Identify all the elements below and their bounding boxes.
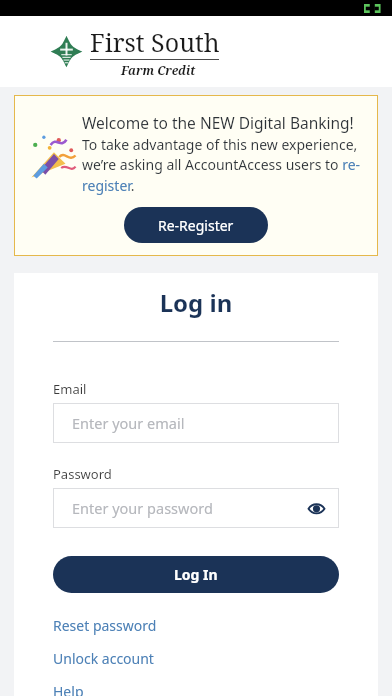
button[interactable]: Enter your email bbox=[53, 403, 339, 443]
staticText: Email bbox=[53, 380, 87, 398]
staticText: Enter your email bbox=[72, 413, 185, 433]
staticText: Welcome to the NEW Digital Banking! bbox=[82, 112, 354, 133]
staticText: Log in bbox=[14, 286, 378, 319]
button[interactable]: Unlock account bbox=[14, 649, 378, 668]
staticText: Help bbox=[53, 682, 84, 696]
button[interactable]: Enter your password bbox=[53, 488, 339, 528]
button[interactable]: Show password bbox=[305, 497, 327, 519]
staticText: Log In bbox=[174, 565, 218, 584]
button[interactable]: Log In bbox=[53, 556, 339, 593]
staticText: Re-Register bbox=[158, 216, 234, 235]
staticText: Password bbox=[53, 465, 112, 483]
staticText: Unlock account bbox=[53, 649, 154, 668]
button[interactable]: Re-Register bbox=[124, 207, 268, 243]
button[interactable]: Reset password bbox=[14, 616, 378, 635]
staticText: Farm Credit bbox=[121, 62, 196, 78]
staticText: Enter your password bbox=[72, 498, 213, 518]
button[interactable]: Help bbox=[14, 682, 378, 696]
staticText: Reset password bbox=[53, 616, 157, 635]
staticText: First South bbox=[90, 25, 220, 59]
staticText: To take advantage of this new experience… bbox=[82, 135, 368, 196]
